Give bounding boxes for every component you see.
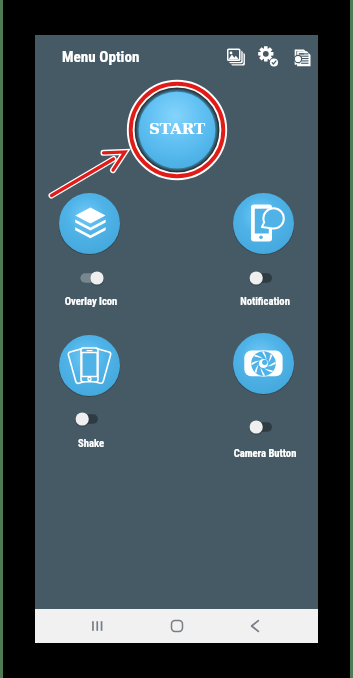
button[interactable]: Notification — [195, 295, 335, 307]
button[interactable]: Back — [233, 613, 277, 643]
button[interactable]: Gallery — [221, 42, 251, 72]
button[interactable]: Camera Button — [232, 332, 295, 395]
staticText: Menu Option — [62, 48, 140, 66]
button[interactable]: Overlay Icon switch — [71, 268, 107, 288]
button[interactable]: Settings — [254, 42, 284, 72]
button[interactable]: Notification switch — [245, 268, 281, 288]
button[interactable]: Shake — [58, 334, 121, 397]
button[interactable]: Recent apps — [75, 613, 119, 643]
staticText: Camera Button — [195, 447, 335, 459]
button[interactable]: Notification — [232, 192, 295, 255]
button[interactable]: Overlay Icon — [58, 192, 121, 255]
staticText: Shake — [21, 437, 161, 449]
staticText: Notification — [195, 295, 335, 307]
button[interactable]: Policy — [287, 42, 317, 72]
button[interactable]: START — [125, 78, 229, 182]
button[interactable]: Shake switch — [71, 409, 107, 429]
button[interactable]: Home — [155, 613, 199, 643]
button[interactable]: Camera Button switch — [245, 417, 281, 437]
staticText: Overlay Icon — [21, 295, 161, 307]
staticText: START — [149, 120, 206, 138]
button[interactable]: Camera Button — [195, 447, 335, 459]
button[interactable]: Shake — [21, 437, 161, 449]
button[interactable]: Menu Option — [62, 48, 140, 66]
button[interactable]: Overlay Icon — [21, 295, 161, 307]
